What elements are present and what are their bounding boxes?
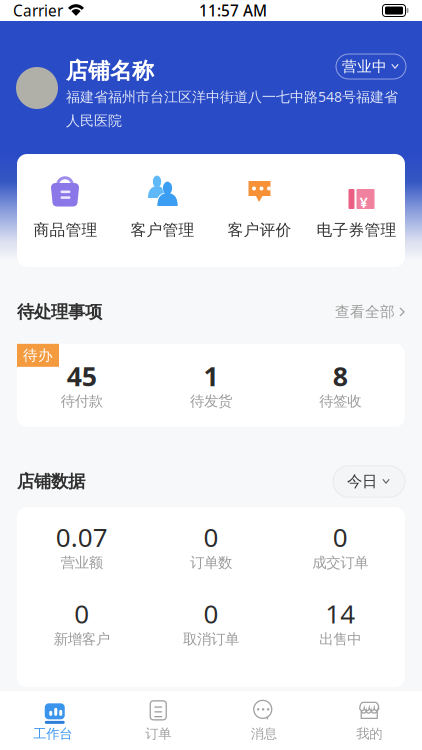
button[interactable]: 工作台 (0, 691, 105, 750)
button[interactable]: 营业中 (336, 54, 406, 79)
staticText: 消息 (251, 725, 277, 742)
staticText: 待处理事项 (17, 301, 102, 323)
staticText: 营业额 (61, 554, 103, 572)
button[interactable]: 查看全部 (335, 303, 405, 321)
staticText: 我的 (356, 725, 382, 742)
button[interactable]: 订单 (105, 691, 211, 750)
button[interactable]: 1 (146, 344, 276, 427)
staticText: 工作台 (33, 725, 72, 742)
staticText: 电子券管理 (316, 220, 396, 240)
staticText: 订单数 (190, 554, 232, 572)
button[interactable]: ¥ (308, 154, 405, 267)
staticText: 客户评价 (227, 220, 291, 240)
staticText: 1 (203, 358, 218, 394)
button[interactable]: 消息 (211, 691, 316, 750)
staticText: 商品管理 (33, 220, 97, 240)
staticText: 0.07 (56, 519, 108, 555)
button[interactable]: 45 (17, 344, 146, 427)
staticText: 待付款 (61, 392, 103, 410)
staticText: 11:57 AM (199, 0, 267, 21)
staticText: 出售中 (319, 630, 361, 648)
staticText: Carrier (13, 0, 63, 21)
button[interactable]: 8 (276, 344, 405, 427)
button[interactable]: 客户评价 (211, 154, 308, 267)
staticText: 店铺名称 (66, 57, 154, 85)
staticText: 店铺数据 (17, 471, 85, 492)
staticText: 查看全部 (335, 303, 395, 321)
button[interactable]: 客户管理 (114, 154, 211, 267)
staticText: 0 (203, 596, 218, 631)
staticText: 0 (203, 519, 218, 555)
button[interactable]: 商品管理 (17, 154, 114, 267)
staticText: 取消订单 (183, 630, 239, 648)
staticText: 营业中 (342, 57, 387, 76)
staticText: 0 (74, 596, 89, 631)
button[interactable]: 今日 (333, 466, 405, 497)
staticText: 成交订单 (312, 554, 368, 572)
button[interactable]: 我的 (316, 691, 422, 750)
staticText: 14 (325, 596, 355, 631)
staticText: 新增客户 (54, 630, 110, 648)
staticText: 0 (333, 519, 348, 555)
staticText: ¥ (359, 192, 367, 212)
staticText: 福建省福州市台江区洋中街道八一七中路548号福建省人民医院 (66, 87, 398, 130)
staticText: 今日 (347, 472, 377, 491)
staticText: 待签收 (319, 392, 361, 410)
staticText: 待发货 (190, 392, 232, 410)
staticText: 45 (67, 358, 97, 394)
staticText: 8 (333, 358, 348, 394)
staticText: 待办 (23, 346, 53, 365)
staticText: 客户管理 (130, 220, 194, 240)
staticText: 订单 (145, 725, 171, 742)
